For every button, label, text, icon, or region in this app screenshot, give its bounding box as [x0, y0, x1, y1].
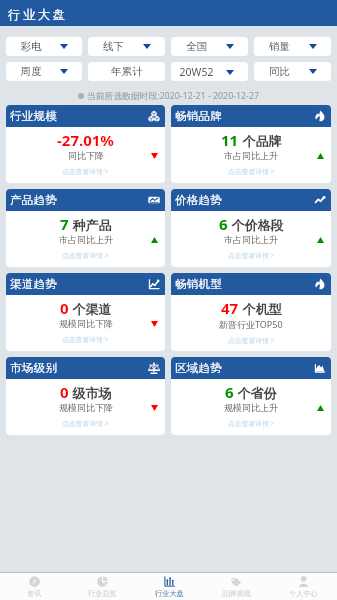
staticText: 市占同比上升 [224, 150, 278, 161]
button[interactable]: 行业总览 [68, 573, 136, 600]
staticText: 资讯 [27, 589, 42, 598]
staticText: 级市场 [69, 384, 112, 402]
button[interactable]: 个人中心 [270, 573, 337, 600]
staticText: 产品趋势 [10, 193, 58, 207]
staticText: 渠道趋势 [10, 277, 58, 291]
staticText: 种产品 [69, 216, 112, 234]
staticText: 点击查看详情 > [228, 336, 275, 345]
staticText: 市占同比上升 [59, 234, 113, 245]
staticText: 点击查看详情 > [228, 419, 275, 428]
staticText: 销量 [254, 40, 305, 53]
staticText: 同比下降 [68, 150, 104, 161]
button[interactable]: 销量 [254, 37, 331, 56]
button[interactable]: 行业大盘 [136, 573, 203, 600]
staticText: 全国 [171, 40, 222, 53]
button[interactable]: 渠道趋势 [6, 273, 165, 351]
staticText: 点击查看详情 > [62, 251, 109, 260]
staticText: 点击查看详情 > [228, 251, 275, 260]
staticText: 11 [221, 130, 239, 150]
staticText: 点击查看详情 > [62, 335, 109, 344]
staticText: 点击查看详情 > [62, 167, 109, 176]
button[interactable]: 全国 [171, 37, 248, 56]
staticText: 彩电 [6, 40, 56, 53]
staticText: 规模同比下降 [59, 318, 113, 329]
staticText: 周度 [6, 65, 56, 78]
staticText: -27.01% [57, 130, 114, 150]
staticText: 畅销机型 [175, 277, 223, 291]
staticText: 规模同比下降 [59, 402, 113, 413]
button[interactable]: 同比 [254, 62, 331, 81]
staticText: 点击查看详情 > [228, 167, 275, 176]
staticText: 年累计 [111, 65, 143, 78]
staticText: 行业大盘 [155, 589, 184, 598]
staticText: 区域趋势 [175, 361, 223, 375]
staticText: 0 [60, 298, 69, 318]
button[interactable]: 彩电 [6, 37, 82, 56]
staticText: 个价格段 [228, 216, 284, 234]
button[interactable]: 区域趋势 [171, 357, 331, 435]
staticText: 线下 [88, 40, 139, 53]
staticText: 个机型 [239, 300, 282, 318]
staticText: 个人中心 [289, 589, 318, 598]
staticText: 6 [219, 214, 228, 234]
staticText: 点击查看详情 > [62, 419, 109, 428]
staticText: 价格趋势 [175, 193, 223, 207]
button[interactable]: 价格趋势 [171, 189, 331, 267]
button[interactable]: 行业规模 [6, 105, 165, 183]
button[interactable]: 产品趋势 [6, 189, 165, 267]
staticText: 品牌表现 [222, 589, 251, 598]
staticText: 0 [60, 382, 69, 402]
staticText: 7 [60, 214, 69, 234]
button[interactable]: 市场级别 [6, 357, 165, 435]
staticText: 个品牌 [239, 132, 282, 150]
staticText: 20W52 [171, 65, 222, 79]
staticText: 当前所选数据时段:2020-12-21 - 2020-12-27 [87, 90, 259, 102]
staticText: 同比 [254, 65, 305, 78]
button[interactable]: 品牌表现 [203, 573, 270, 600]
staticText: 行业总览 [88, 589, 117, 598]
staticText: 47 [221, 298, 239, 318]
staticText: 规模同比上升 [224, 402, 278, 413]
button[interactable]: 畅销品牌 [171, 105, 331, 183]
staticText: 市占同比上升 [224, 234, 278, 245]
staticText: 畅销品牌 [175, 109, 223, 123]
staticText: 6 [225, 382, 234, 402]
button[interactable]: 线下 [88, 37, 165, 56]
staticText: 行业大盘 [8, 7, 68, 23]
staticText: 市场级别 [10, 361, 58, 375]
button[interactable]: 20W52 [171, 62, 248, 81]
staticText: 行业规模 [10, 109, 58, 123]
staticText: 个渠道 [69, 300, 112, 318]
staticText: 新晋行业TOP50 [219, 318, 283, 330]
button[interactable]: 畅销机型 [171, 273, 331, 351]
button[interactable]: 年累计 [88, 62, 165, 81]
staticText: 个省份 [234, 384, 277, 402]
button[interactable]: 周度 [6, 62, 82, 81]
button[interactable]: 资讯 [0, 573, 68, 600]
